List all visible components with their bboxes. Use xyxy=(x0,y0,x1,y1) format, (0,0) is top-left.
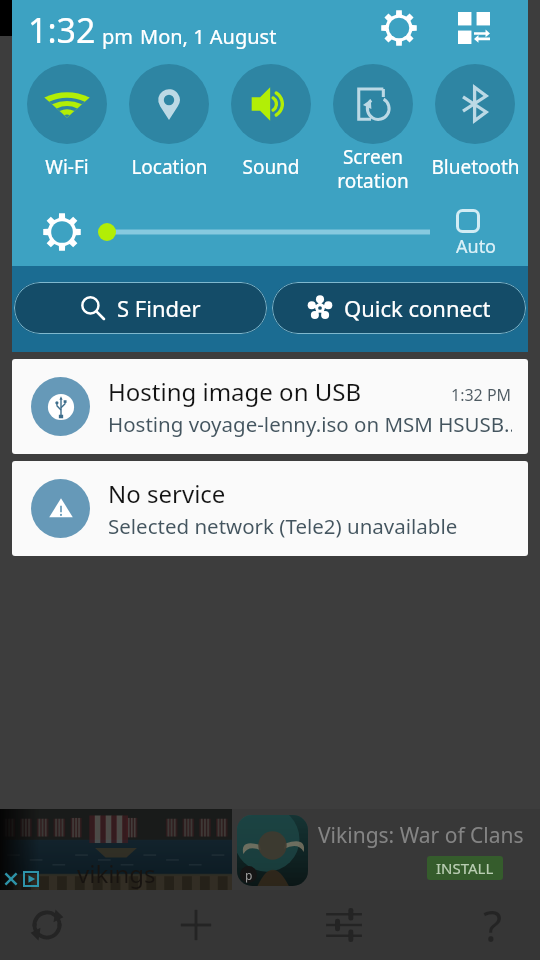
staticText: Screen rotation xyxy=(337,144,409,190)
button[interactable]: Hosting image on USB xyxy=(12,359,528,454)
staticText: Selected network (Tele2) unavailable xyxy=(108,512,458,540)
button[interactable]: Refresh xyxy=(13,890,81,960)
staticText: Hosting image on USB xyxy=(108,375,362,408)
staticText: Location xyxy=(131,154,208,180)
staticText: vikings xyxy=(77,857,156,890)
staticText: ? xyxy=(483,895,503,955)
staticText: Auto xyxy=(456,234,497,259)
button[interactable]: Wi-Fi xyxy=(16,56,118,190)
button[interactable]: Bluetooth xyxy=(424,56,526,190)
button[interactable]: Settings xyxy=(310,890,378,960)
button[interactable]: Location xyxy=(118,56,220,190)
staticText: Quick connect xyxy=(344,293,491,323)
button[interactable]: Add xyxy=(162,890,230,960)
button[interactable]: Quick connect xyxy=(272,282,526,334)
staticText: S Finder xyxy=(117,293,201,323)
button[interactable]: Close ad xyxy=(1,869,21,889)
staticText: p xyxy=(245,867,253,883)
staticText: Wi-Fi xyxy=(45,154,89,180)
staticText: No service xyxy=(108,477,226,510)
staticText: 1:32 PM xyxy=(451,384,512,406)
staticText: Bluetooth xyxy=(431,154,520,180)
staticText: Vikings: War of Clans xyxy=(318,821,524,850)
staticText: pm xyxy=(102,23,133,50)
button[interactable]: Settings xyxy=(377,6,421,50)
button[interactable]: Sound xyxy=(220,56,322,190)
staticText: Mon, 1 August xyxy=(140,23,277,50)
button[interactable]: S Finder xyxy=(14,282,267,334)
button[interactable]: Edit quick settings xyxy=(452,6,496,50)
button[interactable]: Auto brightness xyxy=(448,201,488,241)
button[interactable]: Ad info xyxy=(21,869,41,889)
staticText: Hosting voyage-lenny.iso on MSM HSUSB.. xyxy=(108,410,512,438)
staticText: INSTALL xyxy=(436,858,494,878)
button[interactable]: INSTALL xyxy=(427,856,503,880)
staticText: 1:32 xyxy=(28,7,96,53)
button[interactable]: No service xyxy=(12,461,528,556)
button[interactable]: Screen rotation xyxy=(322,56,424,190)
staticText: Sound xyxy=(242,154,300,180)
